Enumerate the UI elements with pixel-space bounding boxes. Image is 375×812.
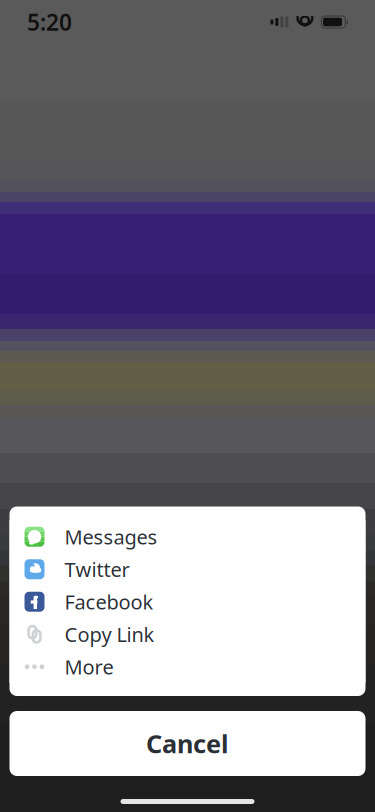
staticText: Cancel [146,727,229,760]
button[interactable]: Messages [9,520,365,553]
button[interactable]: Twitter [9,553,365,585]
staticText: Copy Link [64,621,154,648]
button[interactable]: Cancel [9,711,365,776]
staticText: Facebook [64,588,153,615]
staticText: Twitter [64,556,129,583]
staticText: Messages [64,523,157,550]
button[interactable]: Facebook [9,585,365,618]
button[interactable]: More [9,650,365,683]
staticText: 5:20 [27,7,72,37]
button[interactable]: Copy Link [9,618,365,650]
staticText: More [64,653,113,680]
